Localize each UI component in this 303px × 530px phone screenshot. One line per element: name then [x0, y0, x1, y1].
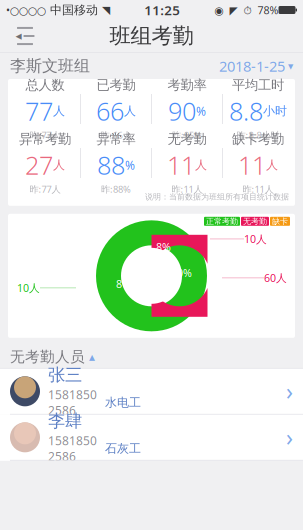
- staticText: 66: [96, 94, 124, 128]
- staticText: %: [125, 157, 135, 173]
- staticText: 人: [53, 104, 65, 118]
- staticText: 水电工: [105, 395, 141, 410]
- staticText: 昨:77人: [29, 129, 60, 141]
- staticText: 张三: [48, 364, 82, 385]
- staticText: ›: [286, 422, 293, 452]
- staticText: 10人: [244, 232, 267, 246]
- button[interactable]: Collapse list: [89, 350, 95, 364]
- button[interactable]: 张三: [0, 369, 303, 415]
- staticText: 15818502586: [48, 432, 97, 464]
- staticText: 李肆: [48, 410, 82, 431]
- staticText: ›: [286, 376, 293, 406]
- staticText: 无考勤: [243, 216, 267, 226]
- staticText: •○○○○: [6, 3, 46, 17]
- staticText: 昨:66人: [100, 129, 131, 141]
- staticText: 缺卡考勤: [232, 131, 284, 147]
- staticText: 8%: [156, 240, 171, 254]
- staticText: 11: [167, 148, 195, 182]
- button[interactable]: 2018-1-25: [219, 56, 293, 76]
- staticText: 班组考勤: [109, 23, 193, 49]
- staticText: 人: [266, 158, 278, 172]
- staticText: 异常考勤: [19, 131, 71, 147]
- staticText: 人: [195, 158, 207, 172]
- staticText: 77: [25, 94, 53, 128]
- staticText: ▴: [89, 350, 95, 364]
- staticText: 27: [25, 148, 53, 182]
- staticText: 15818502586: [48, 386, 97, 418]
- button[interactable]: Menu: [6, 21, 44, 51]
- staticText: %: [196, 103, 206, 119]
- staticText: 异常率: [96, 131, 135, 147]
- staticText: 88: [97, 148, 125, 182]
- staticText: 11: [238, 148, 266, 182]
- staticText: 总人数: [25, 77, 64, 93]
- staticText: 石灰工: [105, 441, 141, 456]
- staticText: ◀: [15, 31, 21, 41]
- staticText: 缺卡: [272, 216, 288, 226]
- staticText: ◉ ◤ ⏱ 78%: [214, 3, 278, 17]
- staticText: 昨:95%: [172, 129, 202, 141]
- staticText: ▾: [288, 60, 293, 72]
- staticText: 昨:77人: [29, 183, 60, 195]
- staticText: 正常考勤: [206, 216, 238, 226]
- staticText: 无考勤人员: [10, 348, 85, 366]
- staticText: 2018-1-25: [219, 56, 285, 76]
- staticText: 已考勤: [96, 77, 135, 93]
- staticText: 昨:88%: [101, 183, 131, 195]
- button[interactable]: 李肆: [0, 415, 303, 461]
- staticText: 考勤率: [167, 77, 206, 93]
- staticText: 昨:8.8小时: [236, 129, 279, 141]
- staticText: 无考勤: [167, 131, 206, 147]
- staticText: 8.8: [229, 94, 263, 128]
- staticText: 昨:11人: [242, 183, 273, 195]
- staticText: ◥: [102, 4, 110, 16]
- staticText: 90: [168, 94, 196, 128]
- staticText: 20%: [171, 266, 192, 280]
- staticText: 中国移动: [46, 3, 102, 17]
- staticText: 60人: [264, 271, 287, 285]
- staticText: 平均工时: [232, 77, 284, 93]
- staticText: 8%: [116, 277, 131, 291]
- staticText: 李斯文班组: [10, 56, 90, 76]
- staticText: 昨:11人: [171, 183, 202, 195]
- staticText: 人: [124, 104, 136, 118]
- staticText: 说明：当前数据为班组所有项目统计数据: [145, 192, 289, 202]
- staticText: 11:25: [144, 1, 180, 19]
- staticText: 小时: [263, 104, 287, 118]
- staticText: 10人: [17, 281, 40, 295]
- staticText: 人: [53, 158, 65, 172]
